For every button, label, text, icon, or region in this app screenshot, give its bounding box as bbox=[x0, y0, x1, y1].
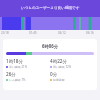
button[interactable]: 0分 bbox=[50, 71, 94, 82]
staticText: いつものユーザーより良い睡眠です bbox=[21, 6, 80, 11]
staticText: 1時18分 bbox=[6, 58, 24, 64]
staticText: 4時22分 bbox=[50, 58, 68, 64]
staticText: 06:16 bbox=[86, 31, 94, 35]
button[interactable]: いつものユーザーより良い睡眠です bbox=[0, 0, 100, 16]
staticText: 26分 bbox=[6, 71, 16, 77]
staticText: レム睡眠 7% bbox=[9, 78, 26, 82]
staticText: 6時06分 bbox=[6, 43, 94, 49]
staticText: 0分 bbox=[50, 71, 58, 77]
staticText: 23:18 bbox=[1, 31, 9, 35]
staticText: 04:12 bbox=[58, 31, 66, 35]
staticText: 01:45 bbox=[29, 31, 37, 35]
button[interactable]: 1時18分 bbox=[6, 58, 50, 69]
staticText: 深い睡眠 21% bbox=[9, 65, 28, 69]
button[interactable]: 26分 bbox=[6, 71, 50, 82]
button[interactable]: 6時06分 bbox=[3, 39, 97, 90]
staticText: 浅い睡眠 72% bbox=[53, 65, 72, 69]
staticText: 短期覚醒 bbox=[53, 78, 65, 82]
button[interactable]: 4時22分 bbox=[50, 58, 94, 69]
